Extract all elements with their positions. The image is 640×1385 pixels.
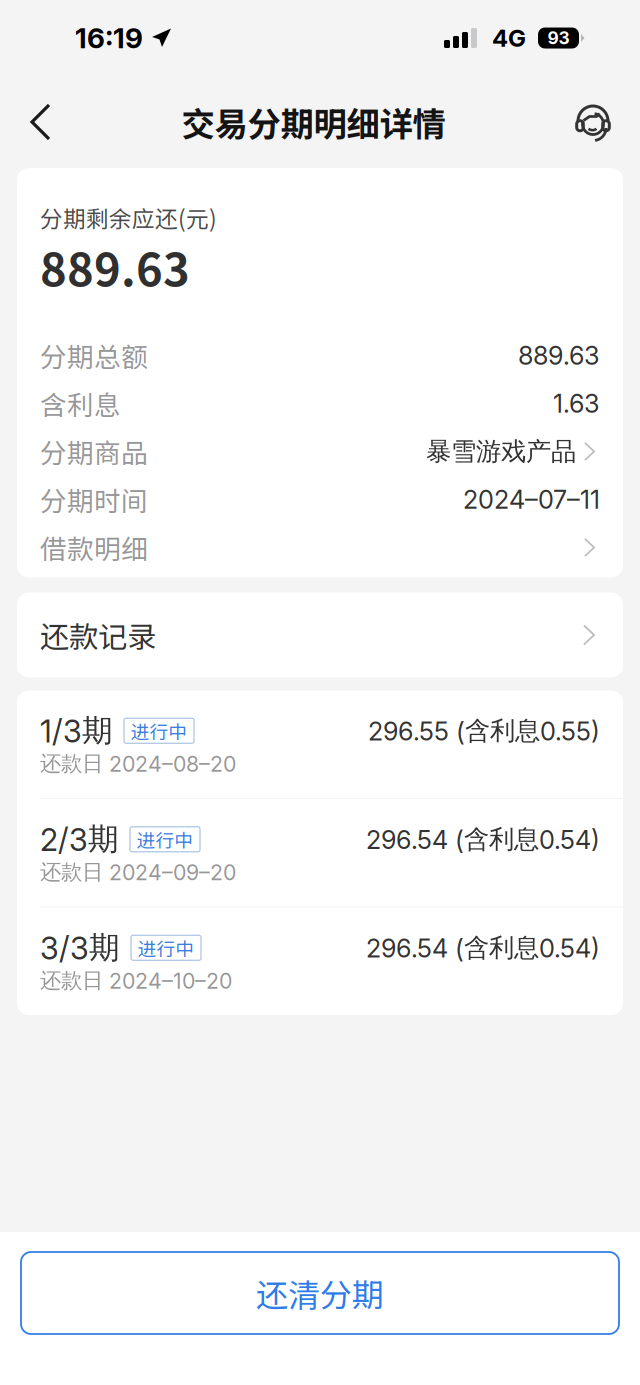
button[interactable]: 借款明细: [40, 523, 600, 571]
staticText: 还款日 2024–08–20: [40, 750, 236, 777]
staticText: 296.54 (含利息0.54): [366, 932, 600, 964]
staticText: 296.54 (含利息0.54): [366, 823, 600, 855]
staticText: 1.63: [553, 388, 600, 419]
staticText: 还清分期: [256, 1270, 384, 1316]
staticText: 分期总额: [40, 336, 148, 375]
staticText: 含利息: [40, 384, 121, 423]
staticText: 93: [547, 27, 569, 48]
staticText: 分期商品: [40, 432, 148, 471]
staticText: 还款日 2024–10–20: [40, 967, 232, 994]
staticText: 借款明细: [40, 528, 148, 567]
staticText: 296.55 (含利息0.55): [368, 715, 600, 747]
staticText: 3/3期: [40, 928, 120, 967]
staticText: 16:19: [75, 21, 143, 55]
staticText: 889.63: [518, 340, 600, 371]
staticText: 交易分期明细详情: [181, 98, 445, 146]
staticText: 1/3期: [40, 711, 113, 750]
staticText: 进行中: [137, 934, 194, 961]
button[interactable]: 分期商品: [40, 427, 600, 475]
staticText: 2/3期: [40, 820, 119, 859]
button[interactable]: Customer service: [564, 91, 622, 153]
staticText: 分期时间: [40, 480, 148, 519]
staticText: 进行中: [136, 826, 193, 853]
staticText: 还款记录: [40, 614, 156, 656]
staticText: 进行中: [130, 717, 187, 744]
staticText: 2024–07–11: [463, 484, 600, 515]
staticText: 分期剩余应还(元): [40, 201, 217, 234]
button[interactable]: Back: [18, 91, 63, 153]
button[interactable]: 还款记录: [17, 592, 623, 677]
button[interactable]: 还清分期: [21, 1252, 619, 1334]
staticText: 889.63: [40, 234, 190, 299]
staticText: 暴雪游戏产品: [426, 435, 576, 467]
staticText: 4G: [492, 23, 526, 52]
staticText: 还款日 2024–09–20: [40, 859, 236, 885]
